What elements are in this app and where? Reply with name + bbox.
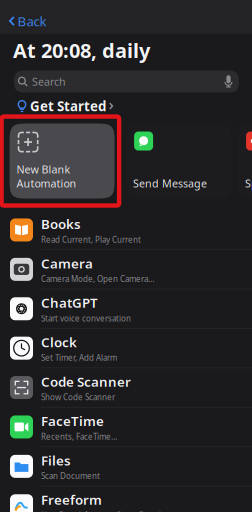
button[interactable]: Files — [0, 447, 252, 486]
staticText: Get Started — [30, 97, 106, 115]
button[interactable]: Speak — [238, 124, 252, 199]
button[interactable]: Back — [0, 0, 56, 34]
button[interactable]: Books — [0, 211, 252, 250]
button[interactable]: Clock — [0, 329, 252, 368]
staticText: Freeform — [41, 491, 102, 508]
button[interactable]: New Blank Automation — [10, 124, 115, 199]
staticText: FaceTime — [41, 412, 104, 430]
staticText: ChatGPT — [41, 294, 98, 311]
staticText: Books — [41, 215, 81, 233]
button[interactable]: Camera — [0, 250, 252, 289]
staticText: Camera — [41, 254, 93, 272]
button[interactable]: Freeform — [0, 486, 252, 512]
staticText: Back — [17, 12, 46, 30]
staticText: Files — [41, 451, 71, 469]
staticText: Clock — [41, 333, 77, 351]
staticText: Set Timer, Add Alarm — [41, 352, 117, 363]
staticText: Start voice conversation — [41, 313, 131, 324]
staticText: At 20:08, daily — [13, 37, 150, 64]
button[interactable]: Send Message — [126, 124, 231, 199]
button[interactable]: Code Scanner — [0, 368, 252, 408]
button[interactable]: FaceTime — [0, 408, 252, 447]
staticText: Send Message — [133, 176, 207, 191]
staticText: Show Code Scanner — [41, 392, 115, 402]
staticText: New Blank Automation — [17, 162, 77, 190]
staticText: Recents, FaceTime… — [41, 431, 117, 442]
button[interactable]: ChatGPT — [0, 289, 252, 329]
staticText: Read Current, Play Current — [41, 234, 141, 245]
button[interactable]: Get Started — [0, 96, 252, 117]
staticText: New Board, Inserts, Open Board… — [41, 510, 167, 512]
staticText: Search — [32, 74, 66, 89]
staticText: Camera Mode, Open Camera… — [41, 274, 154, 284]
staticText: Speak — [245, 176, 252, 191]
staticText: Code Scanner — [41, 373, 131, 390]
staticText: Scan Document — [41, 471, 100, 481]
